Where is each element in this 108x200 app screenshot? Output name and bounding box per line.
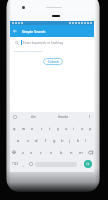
button[interactable]: a xyxy=(14,134,23,146)
button[interactable]: y xyxy=(54,122,62,134)
button[interactable]: s xyxy=(23,134,32,146)
button[interactable]: ?123 xyxy=(10,158,21,170)
staticText: z xyxy=(22,150,24,155)
staticText: e xyxy=(31,126,34,131)
button[interactable]: k xyxy=(74,134,82,146)
staticText: w xyxy=(22,126,26,131)
button[interactable]: p xyxy=(86,122,94,134)
button[interactable]: m xyxy=(76,146,86,158)
staticText: q xyxy=(13,126,16,131)
staticText: Submit xyxy=(48,60,59,64)
button[interactable]: u xyxy=(62,122,70,134)
staticText: j xyxy=(69,138,71,143)
button[interactable]: Submit xyxy=(43,58,63,65)
staticText: o xyxy=(81,126,84,131)
button[interactable]: x xyxy=(27,146,36,158)
button[interactable]: Back xyxy=(10,25,19,37)
staticText: Simple Search xyxy=(22,29,46,34)
staticText: r xyxy=(41,126,43,131)
staticText: Find hashtags without login xyxy=(14,50,43,53)
staticText: . xyxy=(80,162,82,167)
staticText: Enter keywords or hashtag xyxy=(23,41,64,45)
staticText: y xyxy=(57,126,60,131)
button[interactable]: Shift xyxy=(10,146,18,158)
button[interactable]: d xyxy=(32,134,41,146)
staticText: h xyxy=(61,138,64,143)
button[interactable]: c xyxy=(36,146,46,158)
staticText: v xyxy=(50,150,53,155)
staticText: b xyxy=(60,150,63,155)
button[interactable]: o xyxy=(78,122,86,134)
button[interactable]: Emoji xyxy=(27,158,35,170)
staticText: u xyxy=(65,126,68,131)
staticText: , xyxy=(23,162,25,167)
button[interactable]: j xyxy=(66,134,74,146)
staticText: i xyxy=(73,126,75,131)
button[interactable]: l xyxy=(82,134,90,146)
staticText: c xyxy=(40,150,42,155)
staticText: g xyxy=(53,138,56,143)
button[interactable]: e xyxy=(28,122,37,134)
staticText: p xyxy=(89,126,92,131)
button[interactable]: i xyxy=(70,122,78,134)
staticText: m xyxy=(79,150,83,155)
staticText: the xyxy=(31,115,36,119)
button[interactable]: h xyxy=(58,134,66,146)
button[interactable]: Backspace xyxy=(86,146,94,158)
staticText: thanks xyxy=(58,115,69,119)
button[interactable]: n xyxy=(66,146,76,158)
button[interactable]: t xyxy=(46,122,54,134)
staticText: ?123 xyxy=(12,162,19,166)
button[interactable]: , xyxy=(21,158,27,170)
staticText: f xyxy=(45,138,47,143)
staticText: l xyxy=(85,138,87,143)
staticText: k xyxy=(77,138,80,143)
button[interactable]: w xyxy=(19,122,28,134)
button[interactable]: g xyxy=(50,134,58,146)
button[interactable]: z xyxy=(18,146,27,158)
staticText: t xyxy=(49,126,51,131)
button[interactable]: f xyxy=(41,134,50,146)
staticText: d xyxy=(35,138,38,143)
button[interactable]: b xyxy=(56,146,66,158)
staticText: n xyxy=(70,150,73,155)
staticText: a xyxy=(17,138,20,143)
staticText: x xyxy=(30,150,33,155)
button[interactable]: q xyxy=(10,122,19,134)
button[interactable]: v xyxy=(46,146,56,158)
staticText: s xyxy=(27,138,29,143)
button[interactable]: r xyxy=(37,122,46,134)
button[interactable]: Search xyxy=(84,160,92,168)
staticText: I xyxy=(89,115,91,119)
